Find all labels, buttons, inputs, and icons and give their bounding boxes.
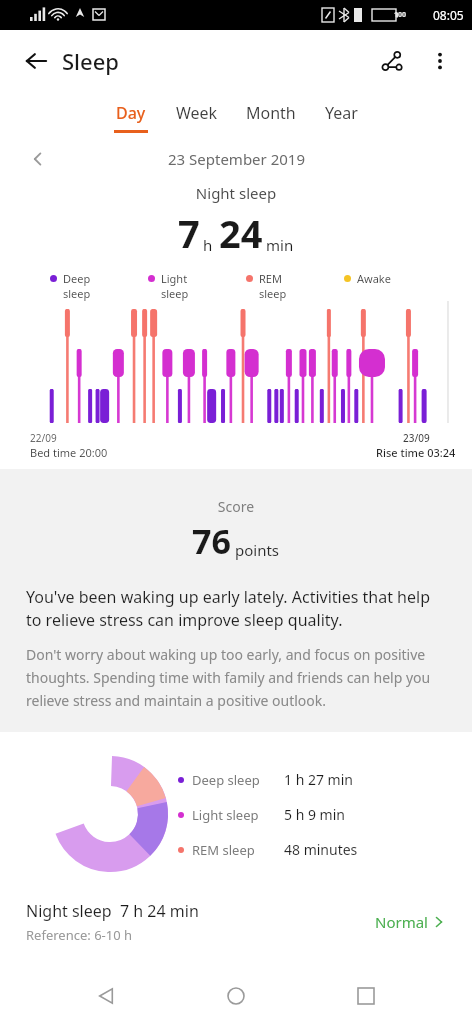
staticText: sleep <box>259 286 287 301</box>
staticText: Rise time 03:24 <box>376 445 456 460</box>
staticText: Sleep <box>62 46 119 76</box>
staticText: 48 minutes <box>284 840 358 859</box>
staticText: Reference: 6-10 h <box>26 926 133 944</box>
staticText: 23 September 2019 <box>168 149 305 169</box>
staticText: sleep <box>63 286 91 301</box>
button[interactable]: Previous day <box>20 141 56 177</box>
staticText: 22/09 <box>30 431 57 445</box>
staticText: 23/09 <box>403 431 430 445</box>
staticText: 1 h 27 min <box>284 770 353 789</box>
staticText: Day <box>116 102 146 124</box>
staticText: h <box>203 235 213 255</box>
staticText: REM sleep <box>192 841 284 859</box>
staticText: Night sleep <box>0 183 472 203</box>
staticText: 24 <box>219 207 263 259</box>
button[interactable]: More options <box>416 37 464 85</box>
staticText: Score <box>0 497 472 516</box>
button[interactable]: Year <box>310 98 372 137</box>
staticText: Normal <box>375 912 428 932</box>
staticText: Week <box>176 102 218 124</box>
staticText: min <box>266 235 294 255</box>
staticText: Deep sleep <box>192 771 284 789</box>
staticText: sleep <box>161 286 189 301</box>
button[interactable]: Back <box>12 37 60 85</box>
button[interactable]: Day <box>100 98 162 137</box>
button[interactable]: Recents <box>342 972 390 1020</box>
staticText: Bed time 20:00 <box>30 445 108 460</box>
button[interactable]: Week <box>162 98 232 137</box>
staticText: 7 <box>178 207 200 259</box>
staticText: You've been waking up early lately. Acti… <box>26 586 446 631</box>
staticText: 7 h 24 min <box>120 900 199 922</box>
staticText: Night sleep <box>26 900 112 922</box>
staticText: 5 h 9 min <box>284 805 345 824</box>
staticText: Month <box>246 102 296 124</box>
button[interactable]: Back <box>82 972 130 1020</box>
staticText: points <box>235 540 280 560</box>
staticText: Light sleep <box>192 806 284 824</box>
button[interactable]: Night sleep <box>0 896 472 948</box>
staticText: Awake <box>357 271 391 286</box>
staticText: Don't worry about waking up too early, a… <box>26 645 446 710</box>
button[interactable]: Month <box>232 98 310 137</box>
staticText: REM <box>259 271 282 286</box>
staticText: 76 <box>192 518 231 564</box>
staticText: 08:05 <box>433 7 464 23</box>
staticText: Year <box>325 102 358 124</box>
button[interactable]: Share <box>368 37 416 85</box>
staticText: Light <box>161 271 188 286</box>
button[interactable]: Home <box>212 972 260 1020</box>
staticText: 100 <box>394 10 407 20</box>
staticText: Deep <box>63 271 91 286</box>
